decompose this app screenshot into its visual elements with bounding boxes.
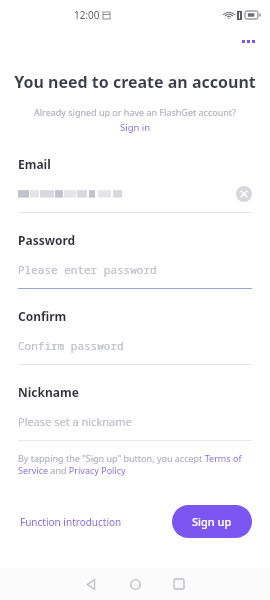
staticText: Password bbox=[18, 232, 76, 248]
button[interactable]: Recent apps bbox=[157, 568, 201, 600]
staticText: Please enter password bbox=[18, 262, 157, 277]
staticText: Already signed up or have an FlashGet ac… bbox=[0, 106, 270, 118]
button[interactable]: By tapping the "Sign up" button, you acc… bbox=[18, 452, 252, 477]
staticText: Function introduction bbox=[20, 515, 122, 529]
staticText: Confirm bbox=[18, 308, 67, 324]
staticText: 12:00 bbox=[74, 8, 100, 22]
button[interactable]: Sign up bbox=[172, 505, 252, 538]
staticText: You need to create an account bbox=[0, 71, 270, 93]
button[interactable]: Back bbox=[69, 568, 113, 600]
staticText: Sign in bbox=[120, 121, 151, 134]
button[interactable]: Sign in bbox=[116, 120, 155, 135]
staticText: Email bbox=[18, 156, 51, 172]
staticText: Confirm password bbox=[18, 338, 124, 353]
button[interactable]: Home bbox=[113, 568, 157, 600]
button[interactable]: More options bbox=[234, 30, 262, 52]
button[interactable]: Clear email bbox=[236, 186, 252, 202]
button[interactable]: Function introduction bbox=[18, 509, 124, 535]
staticText: Sign up bbox=[192, 514, 232, 529]
staticText: Please set a nickname bbox=[18, 414, 132, 429]
staticText: Nickname bbox=[18, 384, 79, 400]
